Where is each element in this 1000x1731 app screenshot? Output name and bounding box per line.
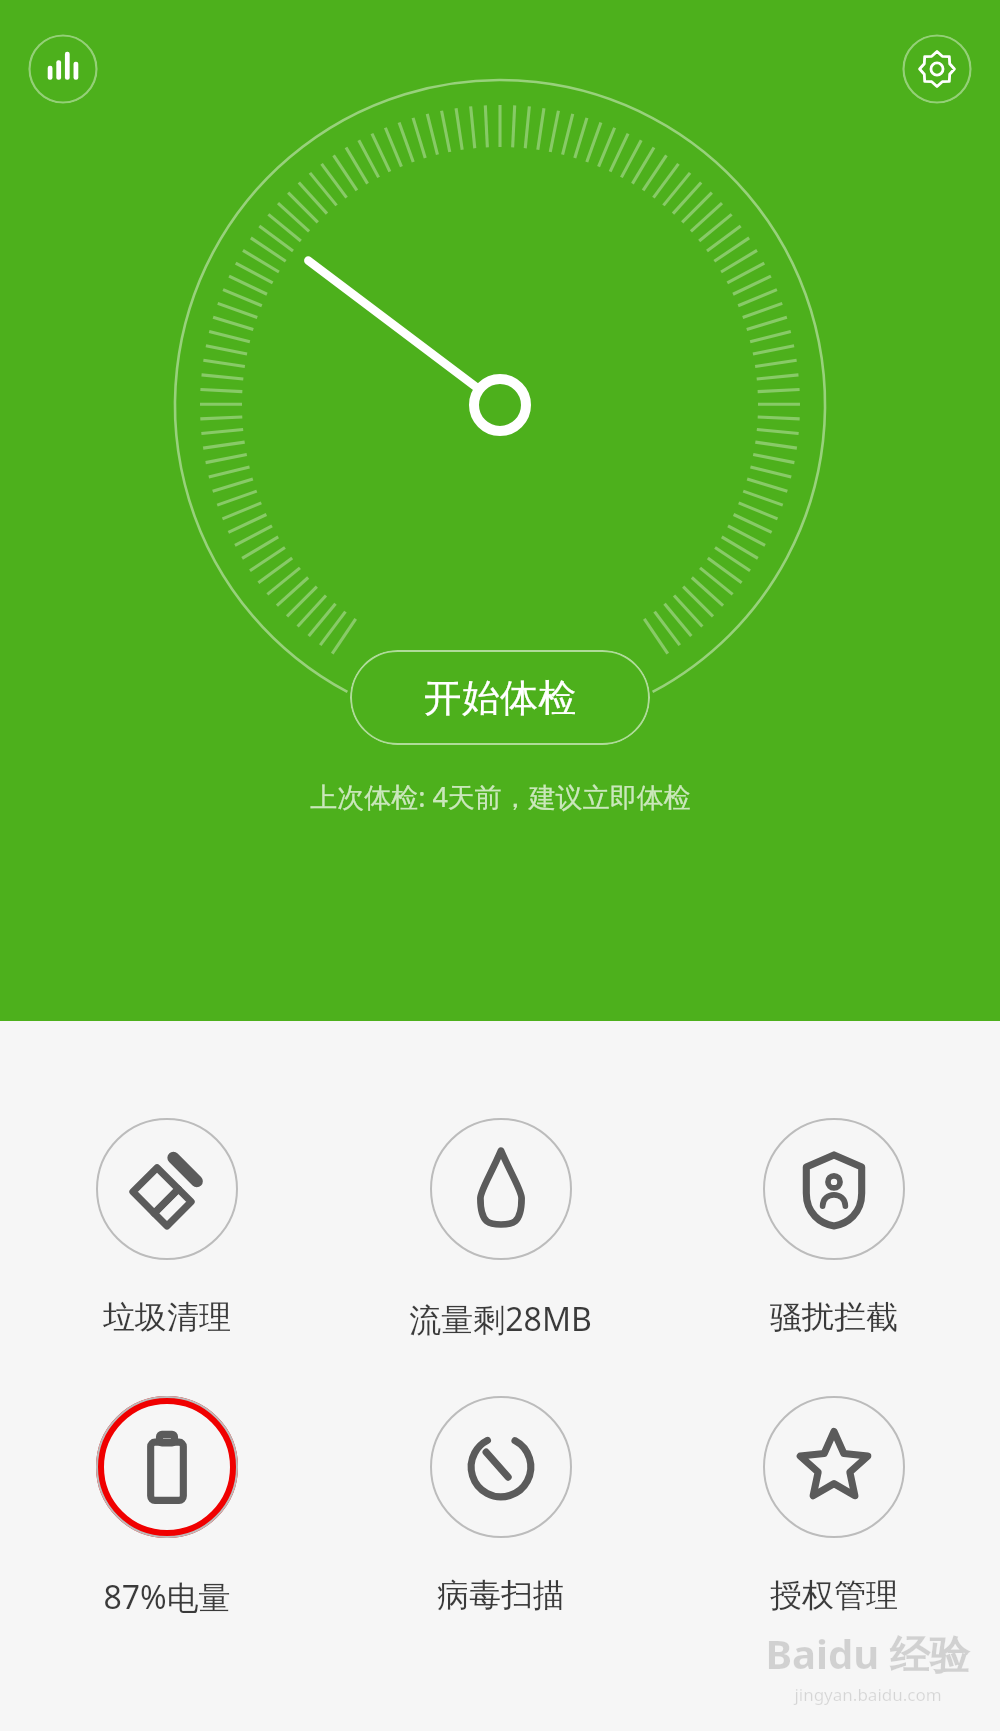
button[interactable]: Settings	[902, 34, 972, 104]
staticText: Baidu 经验	[765, 1626, 970, 1681]
button[interactable]: 授权管理	[667, 1396, 1000, 1615]
button[interactable]: 开始体检	[350, 650, 650, 745]
staticText: 授权管理	[770, 1575, 898, 1615]
staticText: 开始体检	[424, 674, 576, 722]
button[interactable]: 病毒扫描	[334, 1396, 667, 1615]
staticText: jingyan.baidu.com	[794, 1683, 942, 1706]
staticText: 流量剩28MB	[409, 1297, 592, 1341]
staticText: 上次体检: 4天前，建议立即体检	[310, 778, 691, 815]
staticText: 骚扰拦截	[770, 1297, 898, 1337]
button[interactable]: 87%电量	[0, 1396, 334, 1619]
staticText: 病毒扫描	[437, 1575, 565, 1615]
button[interactable]: 垃圾清理	[0, 1118, 334, 1337]
button[interactable]: 流量剩28MB	[334, 1118, 667, 1341]
button[interactable]: Statistics	[28, 34, 98, 104]
button[interactable]: 骚扰拦截	[667, 1118, 1000, 1337]
staticText: 垃圾清理	[103, 1297, 231, 1337]
staticText: 87%电量	[103, 1575, 231, 1619]
